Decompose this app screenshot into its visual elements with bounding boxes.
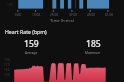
staticText: 0:00 bbox=[11, 13, 25, 17]
staticText: Time (h:m:s) bbox=[0, 18, 124, 24]
button[interactable]: 159 bbox=[0, 38, 62, 55]
staticText: 130 bbox=[4, 73, 10, 77]
button[interactable]: 185 bbox=[62, 38, 124, 55]
staticText: Maximum bbox=[85, 51, 101, 55]
staticText: 150 bbox=[4, 68, 10, 72]
staticText: 61:00 bbox=[102, 13, 116, 17]
staticText: 159 bbox=[24, 38, 39, 50]
staticText: 170 bbox=[4, 63, 10, 67]
staticText: 37:00 bbox=[66, 13, 80, 17]
staticText: 185 bbox=[86, 38, 101, 50]
staticText: Average bbox=[25, 51, 38, 55]
staticText: 190 bbox=[4, 58, 10, 62]
staticText: 180 bbox=[7, 2, 13, 7]
staticText: Heart Rate (bpm) bbox=[5, 28, 47, 35]
staticText: 25:00 bbox=[47, 13, 61, 17]
staticText: 13:00 bbox=[29, 13, 43, 17]
staticText: 49:00 bbox=[84, 13, 98, 17]
